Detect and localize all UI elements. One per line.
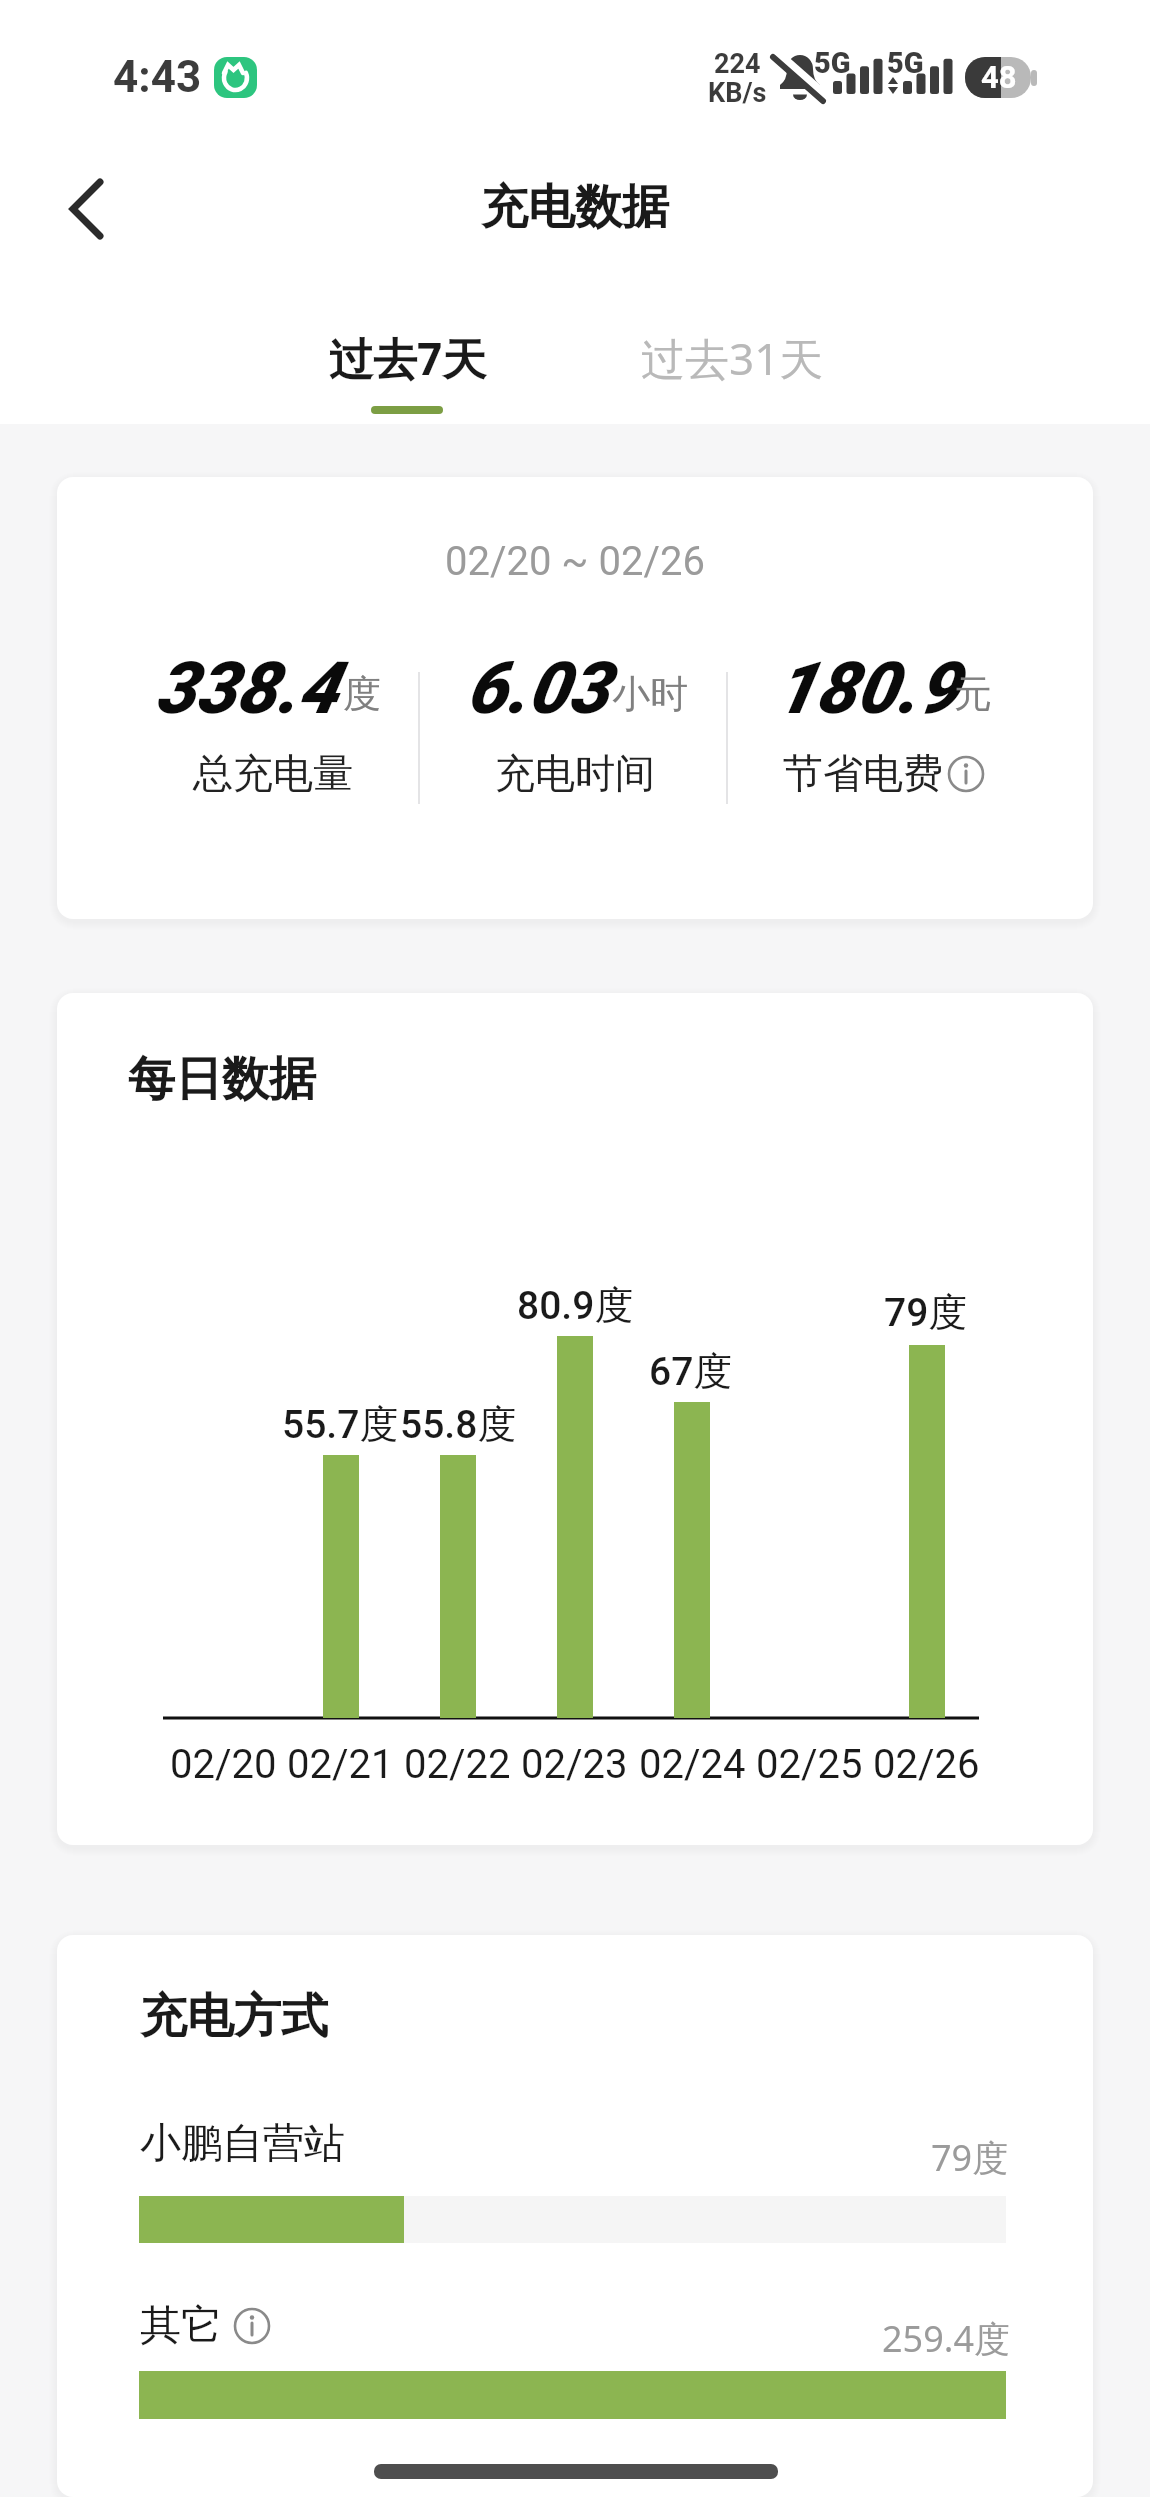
staticText: 每日数据 (128, 1050, 316, 1109)
staticText: 6.03 (466, 646, 609, 730)
button[interactable] (946, 754, 986, 794)
staticText: 48 (981, 59, 1017, 95)
staticText: 充电方式 (140, 1987, 328, 2046)
staticText: 67度 (649, 1347, 733, 1396)
staticText: 259.4度 (882, 2314, 1011, 2363)
button[interactable] (232, 2306, 272, 2346)
staticText: 02/20 (170, 1741, 277, 1788)
staticText: 4:43 (113, 51, 202, 103)
button[interactable] (50, 170, 130, 250)
staticText: 02/24 (639, 1741, 746, 1788)
button[interactable]: 过去31天 (630, 315, 835, 400)
button[interactable]: 过去7天 (320, 315, 495, 400)
staticText: 80.9度 (517, 1281, 634, 1330)
staticText: 度 (343, 670, 381, 718)
staticText: 5G (887, 46, 924, 80)
staticText: 55.7度 (282, 1400, 399, 1449)
staticText: 其它 (140, 2300, 222, 2352)
staticText: 小时 (612, 670, 688, 718)
staticText: 元 (954, 670, 992, 718)
staticText: 79度 (884, 1288, 968, 1337)
staticText: 充电数据 (481, 178, 669, 237)
staticText: 79度 (931, 2133, 1009, 2182)
staticText: 02/21 (287, 1741, 394, 1788)
staticText: 02/20 ~ 02/26 (445, 538, 705, 585)
staticText: 节省电费 (783, 748, 943, 798)
staticText: 小鹏自营站 (140, 2118, 345, 2170)
staticText: 180.9 (775, 646, 958, 730)
staticText: 总充电量 (193, 748, 353, 798)
staticText: 338.4 (155, 646, 338, 730)
staticText: 充电时间 (495, 748, 655, 798)
staticText: 224 (714, 48, 761, 80)
staticText: 02/26 (873, 1741, 980, 1788)
staticText: KB/s (708, 77, 767, 109)
staticText: 02/23 (521, 1741, 628, 1788)
staticText: 55.8度 (400, 1400, 517, 1449)
staticText: 02/25 (756, 1741, 863, 1788)
staticText: 5G (814, 46, 851, 80)
staticText: 02/22 (404, 1741, 511, 1788)
staticText: 过去7天 (329, 328, 487, 388)
staticText: 过去31天 (641, 328, 824, 388)
